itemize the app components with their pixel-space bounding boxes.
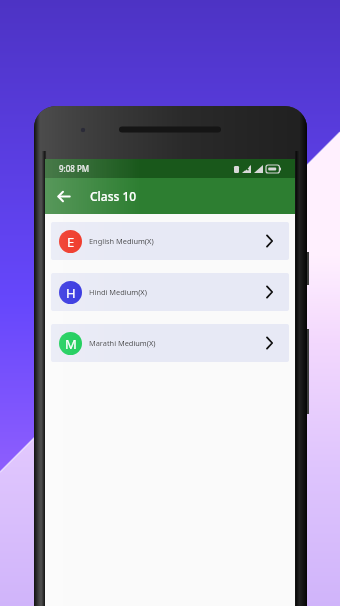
button[interactable]: E — [51, 222, 289, 260]
staticText: 9:08 PM — [59, 163, 90, 174]
staticText: English Medium(X) — [89, 236, 154, 246]
staticText: Hindi Medium(X) — [89, 287, 147, 297]
button[interactable]: M — [51, 324, 289, 362]
staticText: Class 10 — [90, 188, 137, 204]
staticText: H — [66, 284, 76, 302]
staticText: M — [65, 335, 77, 353]
button[interactable]: Back — [45, 178, 81, 214]
staticText: E — [67, 233, 75, 251]
staticText: Marathi Medium(X) — [89, 338, 156, 348]
button[interactable]: H — [51, 273, 289, 311]
